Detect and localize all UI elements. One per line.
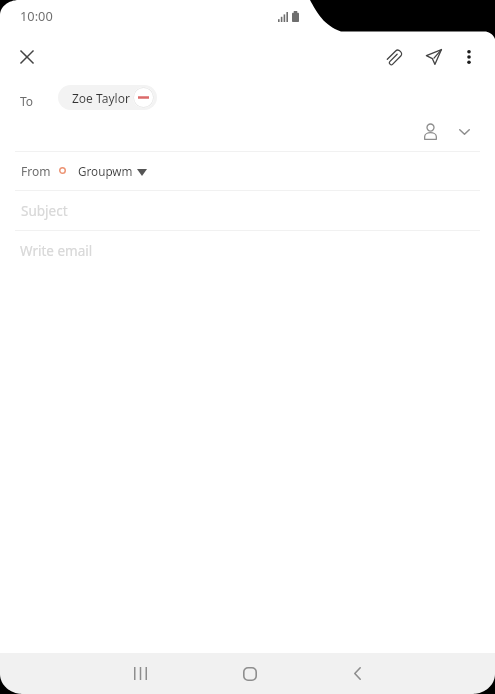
button[interactable]: More options bbox=[449, 37, 489, 77]
button[interactable]: Attach file bbox=[374, 37, 414, 77]
staticText: 10:00 bbox=[20, 7, 53, 24]
staticText: To bbox=[20, 93, 34, 109]
staticText: Write email bbox=[20, 242, 93, 260]
button[interactable]: Back bbox=[333, 653, 382, 694]
staticText: Subject bbox=[21, 202, 68, 220]
staticText: From bbox=[21, 163, 51, 179]
button[interactable]: Close bbox=[7, 37, 47, 77]
button[interactable]: Home bbox=[225, 653, 274, 694]
staticText: Zoe Taylor bbox=[72, 90, 130, 106]
button[interactable]: Groupwm bbox=[78, 160, 148, 180]
button[interactable]: Send bbox=[414, 37, 454, 77]
button[interactable]: Write email bbox=[0, 231, 495, 271]
button[interactable]: Subject bbox=[0, 191, 495, 230]
button[interactable]: Recent apps bbox=[116, 653, 165, 694]
button[interactable]: Choose contacts bbox=[412, 114, 448, 150]
button[interactable]: Zoe Taylor bbox=[58, 85, 157, 110]
button[interactable]: Expand recipients bbox=[446, 114, 482, 150]
staticText: Groupwm bbox=[78, 163, 133, 179]
